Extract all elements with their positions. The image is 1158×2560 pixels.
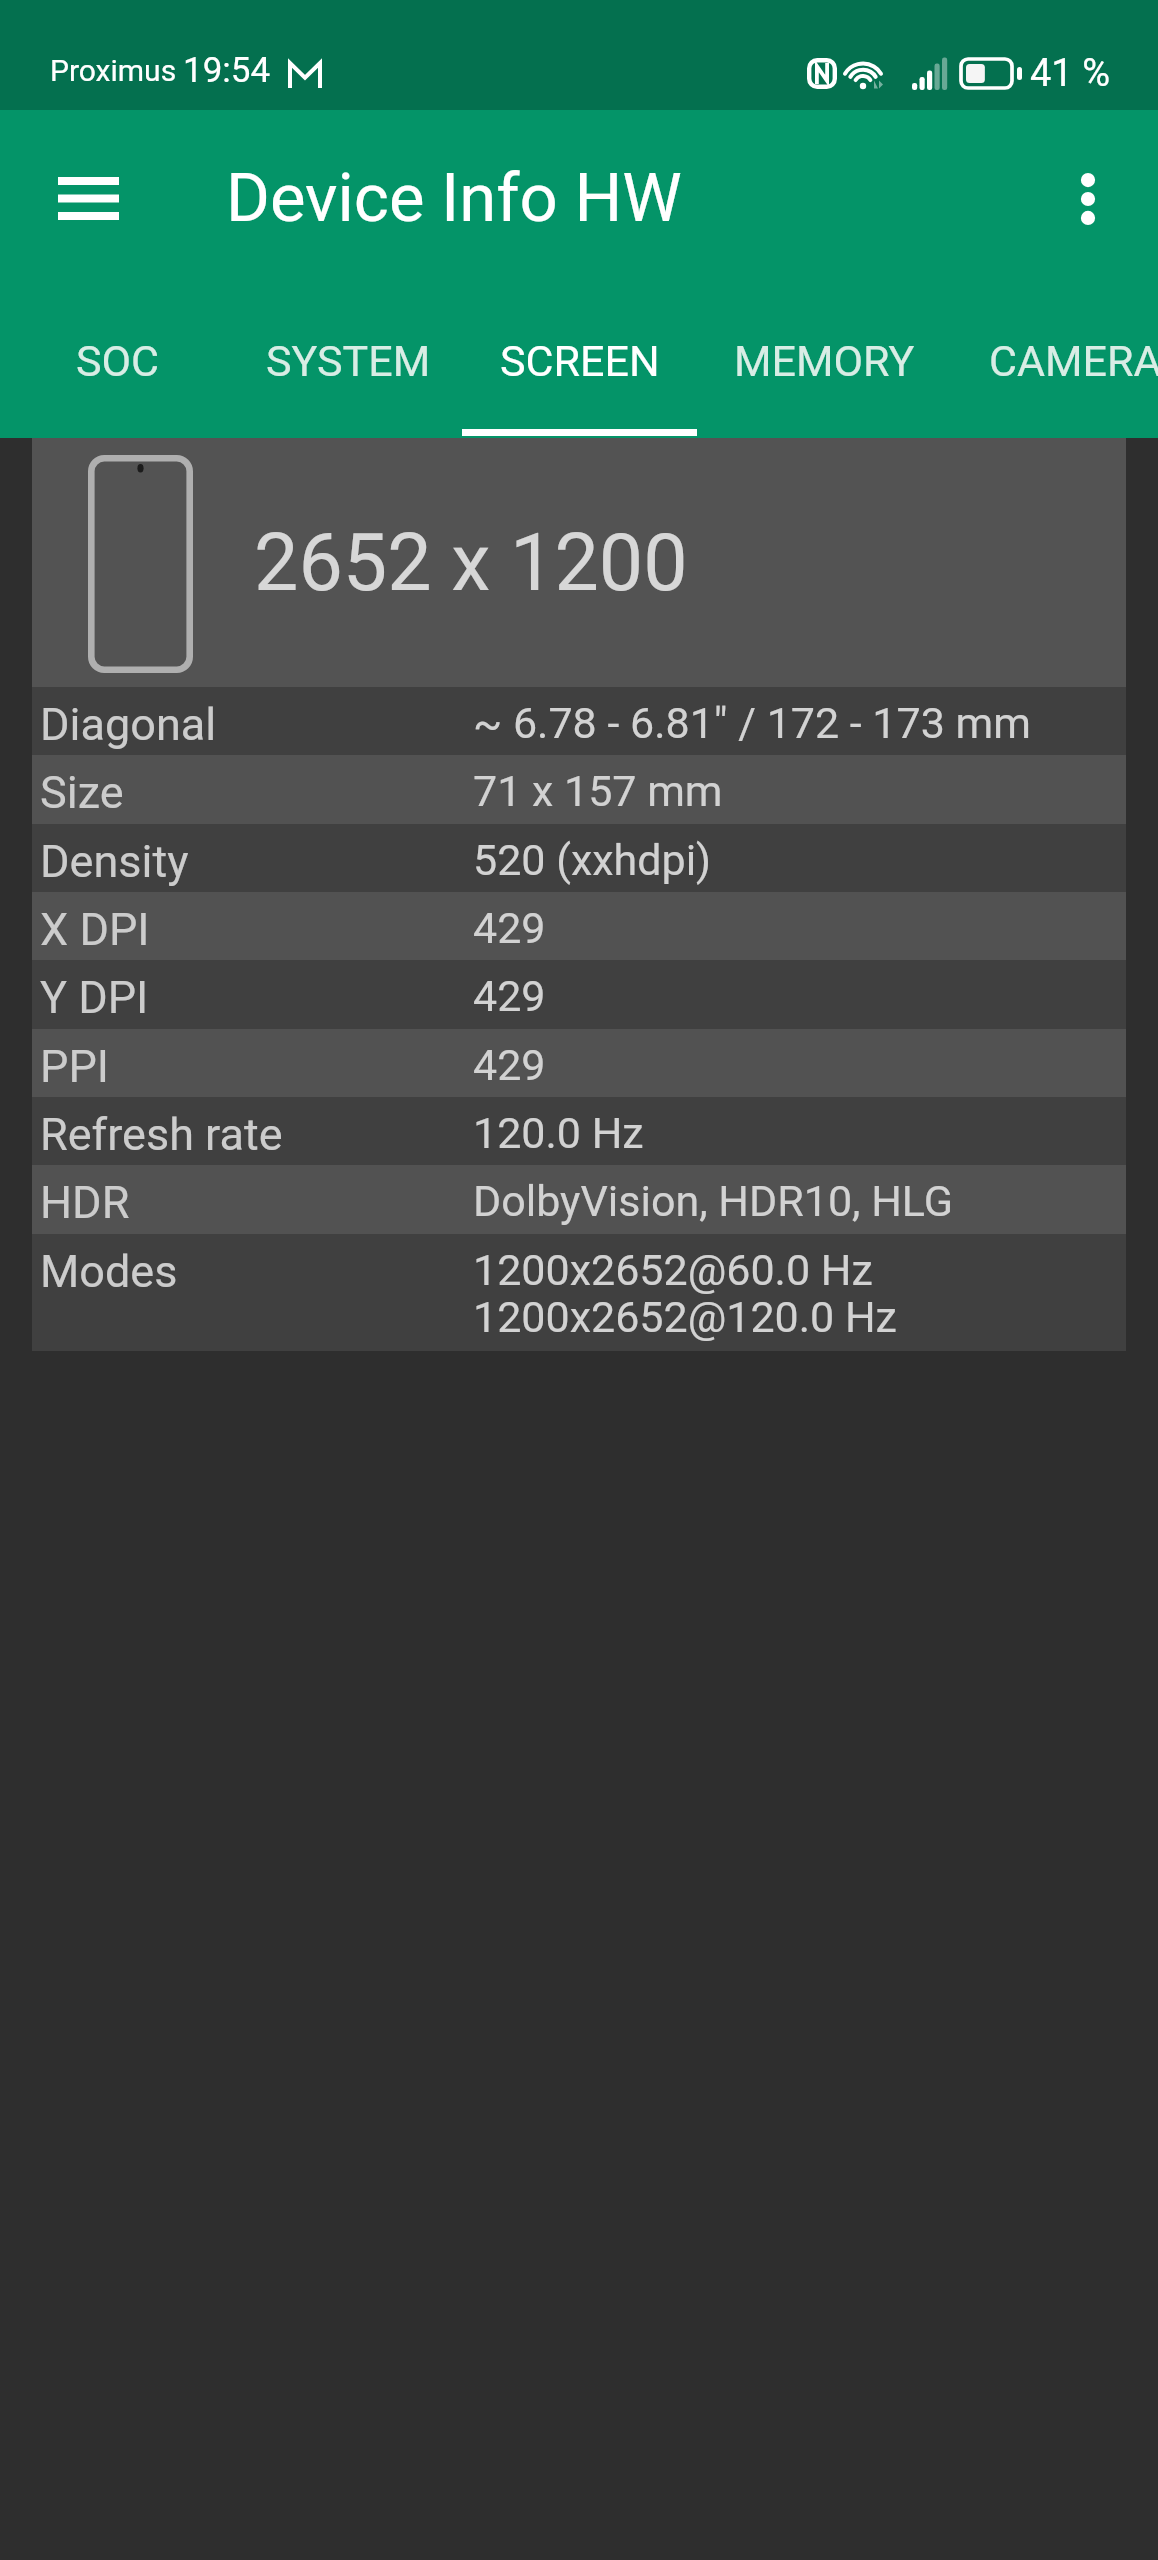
staticText: 1200x2652@60.0 Hz 1200x2652@120.0 Hz	[473, 1245, 897, 1343]
staticText: Y DPI	[40, 971, 149, 1024]
staticText: 120.0 Hz	[473, 1108, 644, 1158]
staticText: Density	[40, 835, 189, 888]
button[interactable]: CAMERA	[948, 328, 1158, 438]
staticText: MEMORY	[734, 336, 915, 386]
staticText: Size	[40, 766, 124, 819]
staticText: SOC	[76, 336, 160, 386]
staticText: 429	[473, 971, 546, 1021]
staticText: CAMERA	[989, 336, 1158, 386]
button[interactable]: Open navigation drawer	[40, 150, 136, 246]
button[interactable]: X DPI	[32, 892, 1126, 960]
staticText: 429	[473, 903, 546, 953]
staticText: Diagonal	[40, 698, 217, 751]
staticText: Device Info HW	[226, 159, 682, 238]
button[interactable]: SCREEN	[462, 328, 697, 438]
button[interactable]: Size	[32, 755, 1126, 824]
staticText: Proximus	[50, 53, 177, 88]
staticText: 41 %	[1030, 51, 1110, 96]
staticText: 2652 x 1200	[254, 517, 688, 610]
button[interactable]: MEMORY	[697, 328, 952, 438]
button[interactable]: HDR	[32, 1165, 1126, 1234]
staticText: PPI	[40, 1040, 110, 1093]
staticText: Modes	[40, 1245, 178, 1298]
staticText: SCREEN	[500, 336, 660, 386]
staticText: 19:54	[183, 50, 271, 91]
button[interactable]: SOC	[0, 328, 235, 438]
button[interactable]: Diagonal	[32, 687, 1126, 755]
button[interactable]: Modes	[32, 1234, 1126, 1351]
staticText: SYSTEM	[266, 336, 431, 386]
button[interactable]: Y DPI	[32, 960, 1126, 1029]
button[interactable]: 2652 x 1200	[32, 438, 1126, 687]
staticText: DolbyVision, HDR10, HLG	[473, 1176, 953, 1226]
staticText: HDR	[40, 1176, 130, 1229]
button[interactable]: Refresh rate	[32, 1097, 1126, 1165]
staticText: 520 (xxhdpi)	[473, 835, 712, 885]
button[interactable]: Density	[32, 824, 1126, 892]
button[interactable]: SYSTEM	[235, 328, 462, 438]
button[interactable]: PPI	[32, 1029, 1126, 1097]
staticText: 71 x 157 mm	[473, 766, 723, 816]
staticText: ~ 6.78 - 6.81" / 172 - 173 mm	[473, 698, 1031, 748]
staticText: X DPI	[40, 903, 150, 956]
button[interactable]: More options	[1040, 151, 1136, 247]
staticText: 429	[473, 1040, 546, 1090]
staticText: Refresh rate	[40, 1108, 283, 1161]
